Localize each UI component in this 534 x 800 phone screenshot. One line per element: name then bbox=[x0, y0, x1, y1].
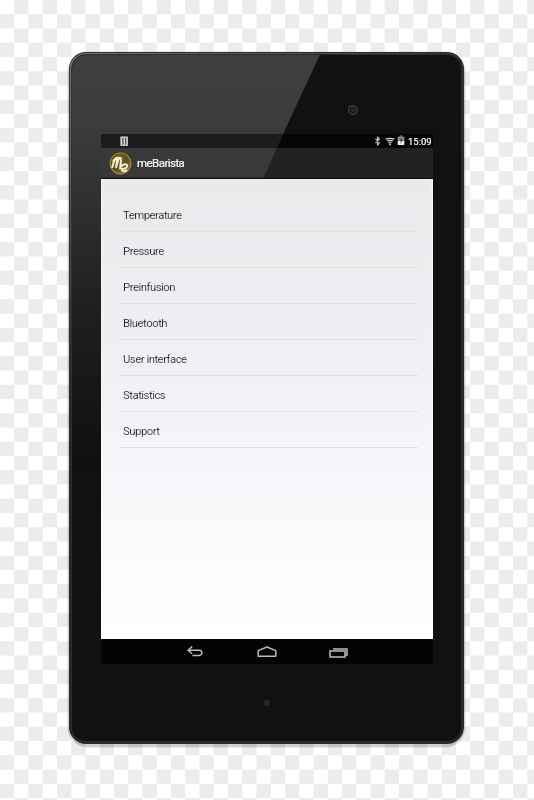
button[interactable]: Back bbox=[169, 639, 223, 664]
button[interactable]: Recent apps bbox=[311, 639, 365, 664]
staticText: Support bbox=[123, 424, 160, 437]
button[interactable]: meBarista bbox=[101, 148, 433, 179]
staticText: 15:09 bbox=[408, 136, 432, 147]
staticText: Pressure bbox=[123, 244, 164, 257]
button[interactable]: Bluetooth bbox=[101, 304, 433, 340]
button[interactable]: Home bbox=[240, 639, 294, 664]
button[interactable]: Support bbox=[101, 412, 433, 448]
staticText: Preinfusion bbox=[123, 280, 175, 293]
staticText: User interface bbox=[123, 352, 187, 365]
button[interactable]: Pressure bbox=[101, 232, 433, 268]
button[interactable]: Temperature bbox=[101, 196, 433, 232]
button[interactable]: Preinfusion bbox=[101, 268, 433, 304]
staticText: meBarista bbox=[137, 156, 185, 169]
button[interactable]: User interface bbox=[101, 340, 433, 376]
staticText: Bluetooth bbox=[123, 316, 168, 329]
staticText: Statistics bbox=[123, 388, 166, 401]
button[interactable]: Statistics bbox=[101, 376, 433, 412]
staticText: Temperature bbox=[123, 208, 182, 221]
